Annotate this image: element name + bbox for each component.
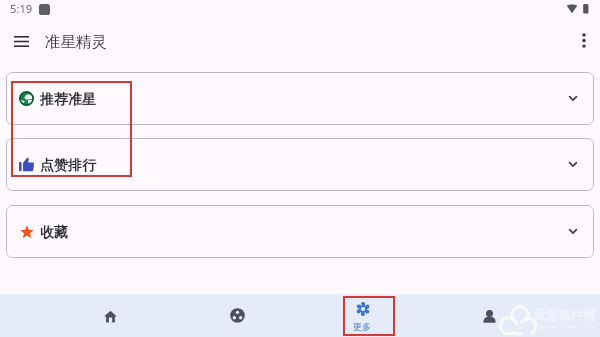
staticText: 点赞排行: [40, 157, 96, 175]
button[interactable]: More: [333, 294, 393, 337]
staticText: 5:19: [10, 1, 33, 16]
button[interactable]: 收藏: [6, 205, 594, 258]
staticText: 准星精灵: [45, 32, 107, 52]
button[interactable]: Discover: [207, 294, 267, 337]
staticText: 更多: [353, 321, 371, 332]
staticText: 收藏: [40, 224, 68, 242]
staticText: www.i3wn.com: [540, 323, 598, 331]
button[interactable]: Home: [80, 294, 140, 337]
staticText: 推荐准星: [40, 91, 96, 109]
staticText: 爱意软件网: [534, 307, 596, 323]
button[interactable]: More options: [567, 24, 600, 57]
button[interactable]: 推荐准星: [6, 72, 594, 125]
button[interactable]: Profile: [459, 294, 519, 337]
button[interactable]: 点赞排行: [6, 138, 594, 191]
button[interactable]: Menu: [4, 24, 38, 58]
